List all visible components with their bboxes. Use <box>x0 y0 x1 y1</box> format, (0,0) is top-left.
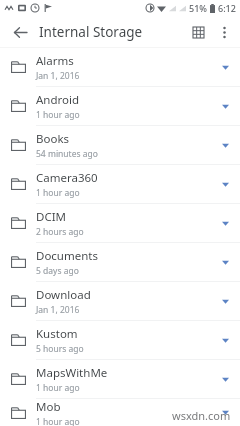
button[interactable]: Grid view <box>185 19 211 45</box>
button[interactable]: More options <box>211 19 237 45</box>
staticText: 54 minutes ago <box>36 148 98 160</box>
button[interactable]: Expand Documents <box>210 243 240 281</box>
button[interactable]: Expand Camera360 <box>210 165 240 203</box>
button[interactable]: Kustom <box>0 321 240 359</box>
button[interactable]: DCIM <box>0 204 240 242</box>
button[interactable]: Expand Download <box>210 282 240 320</box>
staticText: Documents <box>36 248 98 264</box>
staticText: Kustom <box>36 326 78 342</box>
staticText: Android <box>36 92 80 108</box>
staticText: Books <box>36 131 70 147</box>
button[interactable]: Expand Mob <box>210 399 240 426</box>
staticText: 6:12 <box>218 2 236 14</box>
button[interactable]: Camera360 <box>0 165 240 203</box>
staticText: 5 hours ago <box>36 343 84 355</box>
button[interactable]: Mob <box>0 399 240 426</box>
staticText: Mob <box>36 399 61 415</box>
staticText: 51% <box>189 2 207 14</box>
staticText: Internal Storage <box>39 23 143 41</box>
staticText: Jan 1, 2016 <box>36 304 80 316</box>
button[interactable]: Download <box>0 282 240 320</box>
button[interactable]: Back <box>8 20 32 44</box>
button[interactable]: Books <box>0 126 240 164</box>
button[interactable]: Expand Kustom <box>210 321 240 359</box>
staticText: wsxdn.com <box>172 408 231 423</box>
staticText: 2 hours ago <box>36 226 84 238</box>
staticText: 1 hour ago <box>36 416 80 426</box>
button[interactable]: Android <box>0 87 240 125</box>
staticText: 5 days ago <box>36 265 79 277</box>
button[interactable]: Expand Books <box>210 126 240 164</box>
staticText: Alarms <box>36 53 74 69</box>
staticText: 1 hour ago <box>36 109 80 121</box>
staticText: Download <box>36 287 91 303</box>
button[interactable]: MapsWithMe <box>0 360 240 398</box>
staticText: MapsWithMe <box>36 365 108 381</box>
button[interactable]: Alarms <box>0 48 240 86</box>
staticText: DCIM <box>36 209 66 225</box>
button[interactable]: Expand DCIM <box>210 204 240 242</box>
button[interactable]: Expand MapsWithMe <box>210 360 240 398</box>
staticText: Jan 1, 2016 <box>36 70 80 82</box>
button[interactable]: Expand Alarms <box>210 48 240 86</box>
staticText: 1 hour ago <box>36 382 80 394</box>
button[interactable]: Documents <box>0 243 240 281</box>
staticText: 1 hour ago <box>36 187 80 199</box>
staticText: Camera360 <box>36 170 98 186</box>
button[interactable]: Expand Android <box>210 87 240 125</box>
